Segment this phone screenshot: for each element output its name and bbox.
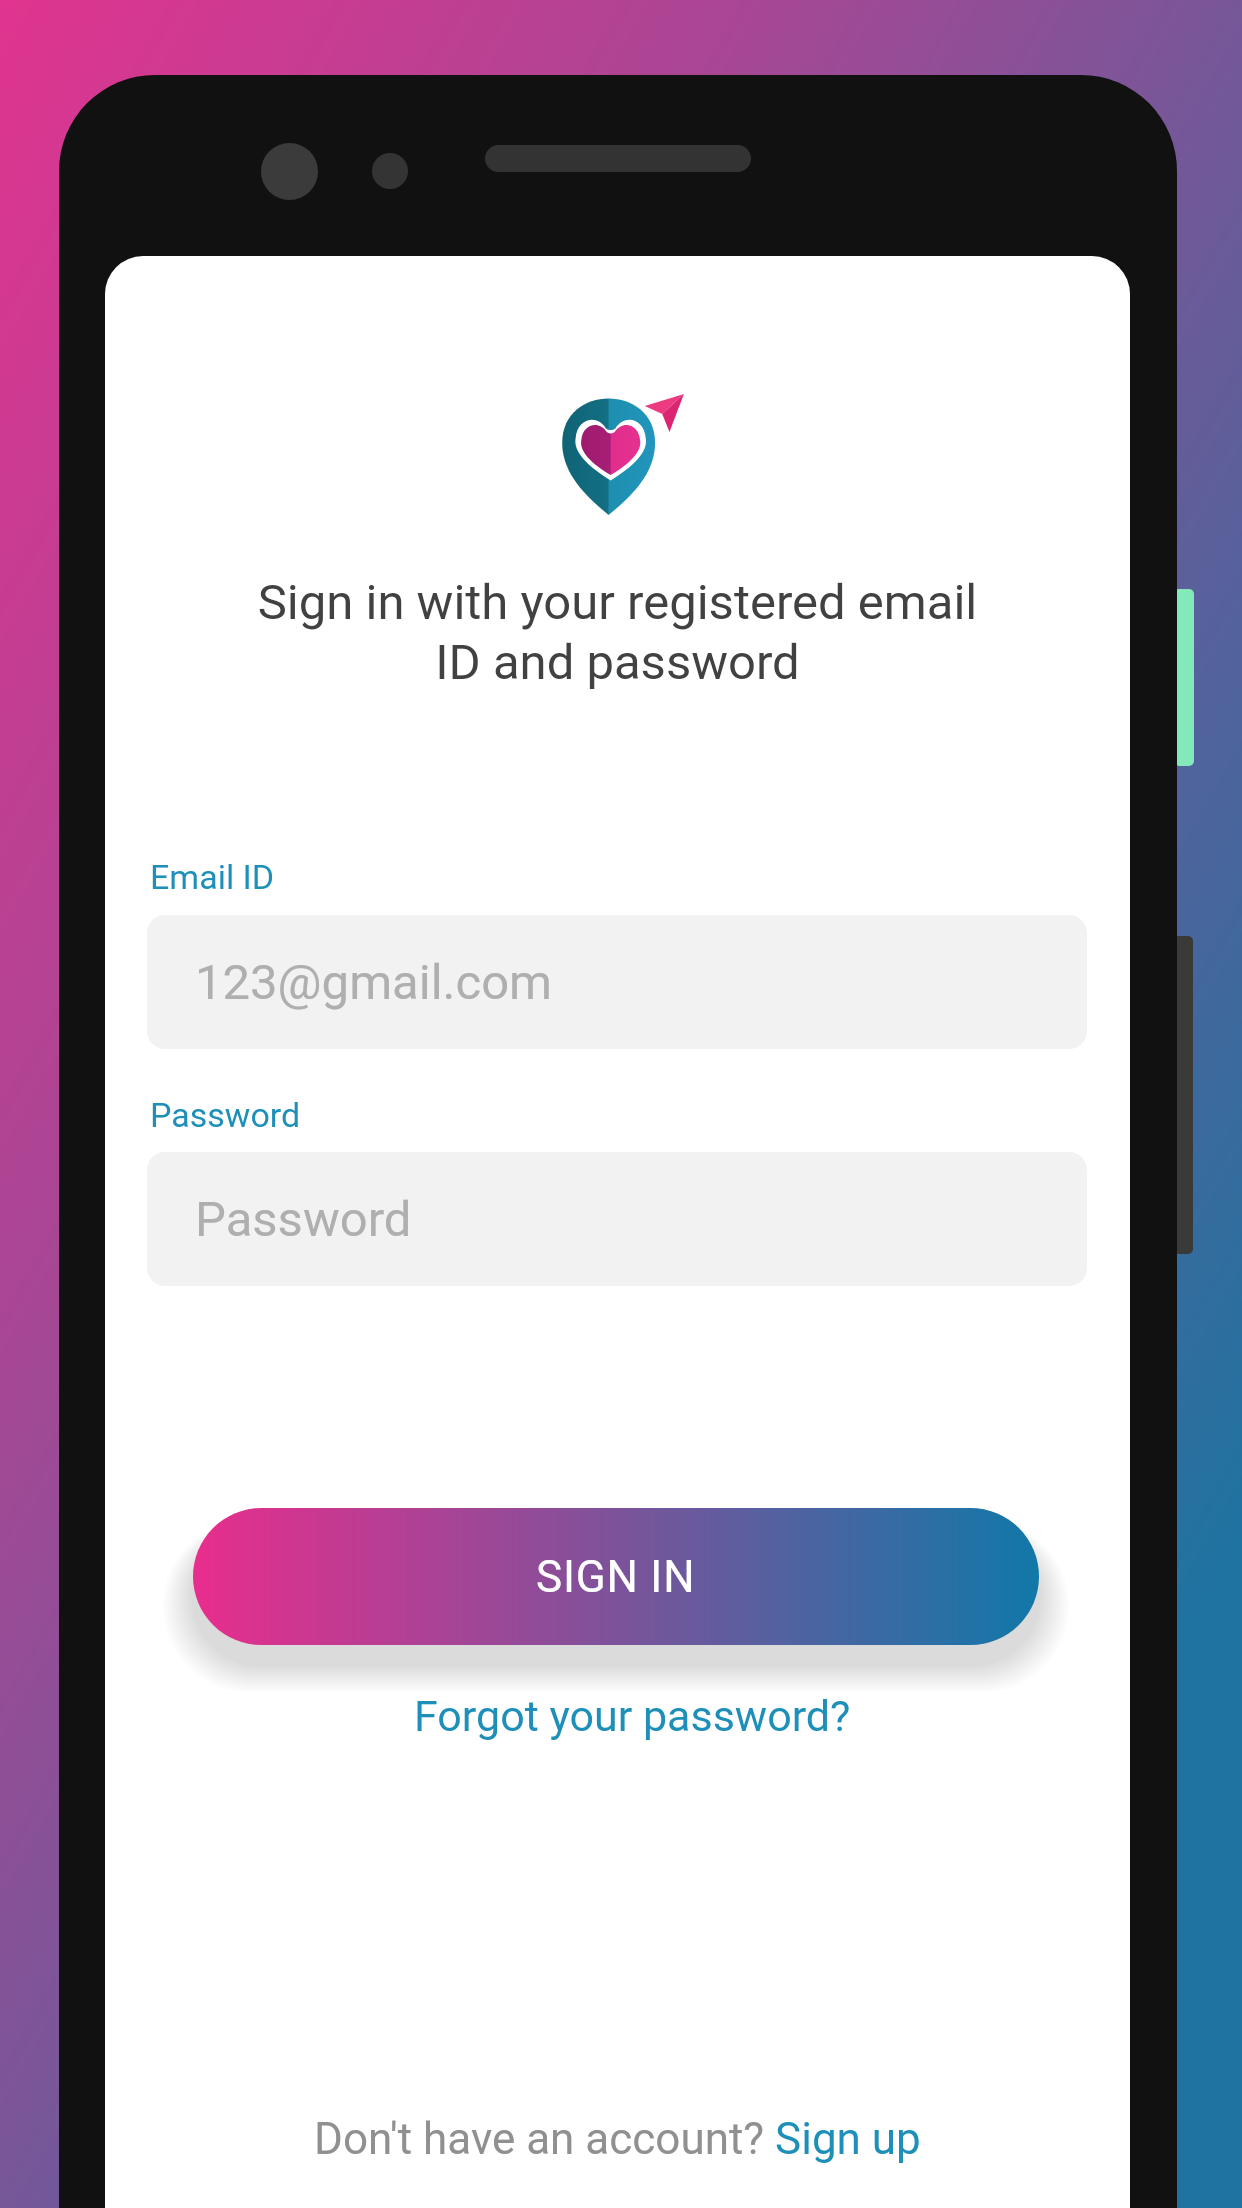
button[interactable]: Don't have an account? Sign up: [302, 2107, 933, 2171]
staticText: 123@gmail.com: [195, 954, 553, 1011]
staticText: Sign in with your registered email ID an…: [105, 574, 1130, 691]
staticText: Email ID: [150, 857, 275, 897]
button[interactable]: 123@gmail.com: [147, 915, 1087, 1049]
staticText: Don't have an account? Sign up: [314, 2113, 921, 2165]
other: App logo: [555, 390, 687, 518]
staticText: Forgot your password?: [414, 1691, 851, 1741]
staticText: Password: [195, 1191, 412, 1248]
button[interactable]: Password: [147, 1152, 1087, 1286]
staticText: SIGN IN: [536, 1551, 696, 1603]
button[interactable]: SIGN IN: [193, 1508, 1039, 1645]
staticText: Password: [150, 1095, 301, 1135]
button[interactable]: Forgot your password?: [398, 1683, 867, 1749]
